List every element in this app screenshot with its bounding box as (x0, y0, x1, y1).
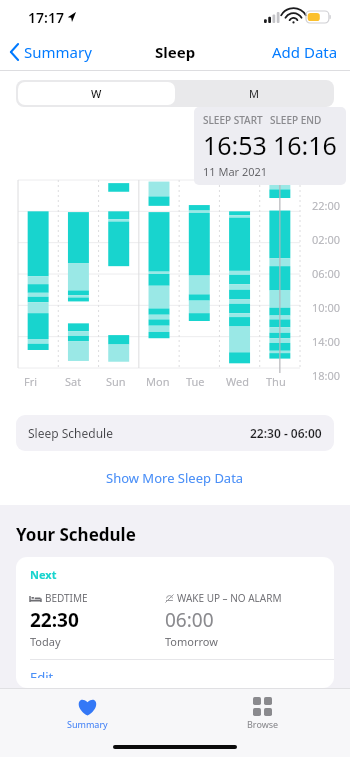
staticText: Sleep Schedule (28, 425, 113, 441)
button[interactable]: Sleep Schedule (16, 415, 334, 451)
staticText: SLEEP START (203, 113, 263, 127)
staticText: Next (30, 567, 57, 582)
staticText: Summary (67, 718, 108, 730)
staticText: 18:00 (312, 368, 341, 383)
staticText: Today (30, 634, 61, 649)
button[interactable]: W (18, 82, 175, 105)
button[interactable]: Edit (16, 660, 334, 688)
staticText: 10:00 (312, 300, 341, 315)
staticText: Tue (186, 374, 205, 389)
button[interactable]: Summary (0, 38, 100, 66)
button[interactable]: Browse (175, 689, 350, 737)
staticText: 14:00 (312, 334, 341, 349)
staticText: Tomorrow (165, 634, 218, 649)
staticText: SLEEP END (270, 113, 322, 127)
staticText: Your Schedule (16, 523, 136, 546)
button[interactable]: M (175, 82, 332, 105)
staticText: 11 Mar 2021 (203, 164, 268, 179)
staticText: Fri (24, 374, 38, 389)
staticText: M (249, 86, 259, 101)
staticText: 16:16 (273, 128, 337, 162)
staticText: Edit (30, 668, 54, 678)
staticText: 02:00 (312, 232, 341, 247)
staticText: Mon (146, 374, 170, 389)
staticText: 06:00 (312, 266, 341, 281)
staticText: 22:30 - 06:00 (250, 425, 322, 441)
staticText: WAKE UP – NO ALARM (177, 591, 282, 605)
staticText: 16:53 (203, 128, 267, 162)
staticText: 22:30 (30, 607, 79, 633)
staticText: W (91, 86, 102, 101)
staticText: 06:00 (165, 607, 214, 633)
button[interactable]: Add Data (260, 38, 350, 66)
staticText: Sat (65, 374, 82, 389)
staticText: Thu (266, 374, 286, 389)
staticText: Sun (106, 374, 126, 389)
staticText: Browse (247, 718, 279, 730)
staticText: BEDTIME (45, 591, 88, 605)
button[interactable]: Show More Sleep Data (90, 465, 260, 491)
staticText: Wed (226, 374, 249, 389)
staticText: 17:17 (28, 8, 64, 27)
button[interactable]: Summary (0, 689, 175, 737)
staticText: Sleep (155, 42, 196, 62)
staticText: Summary (24, 42, 92, 62)
staticText: 22:00 (312, 198, 341, 213)
